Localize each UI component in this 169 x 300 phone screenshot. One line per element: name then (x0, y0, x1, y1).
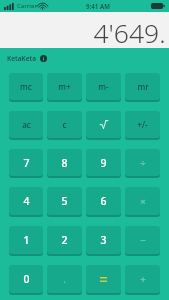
staticText: 7 (23, 156, 30, 170)
button[interactable]: m- (86, 73, 121, 100)
staticText: ÷ (140, 156, 146, 169)
staticText: mr (137, 81, 149, 92)
button[interactable]: 3 (86, 226, 121, 254)
staticText: Carrier (17, 2, 37, 10)
button[interactable]: 4 (9, 187, 43, 215)
button[interactable]: + (125, 265, 160, 293)
staticText: − (140, 234, 146, 247)
staticText: 5 (61, 194, 68, 208)
button[interactable]: − (125, 226, 160, 254)
staticText: 9 (100, 156, 107, 170)
staticText: KetaKeta (7, 54, 36, 63)
button[interactable]: 7 (9, 149, 43, 176)
staticText: 8 (61, 156, 68, 170)
button[interactable]: 0 (9, 265, 43, 293)
staticText: m+ (58, 81, 71, 92)
button[interactable]: 9 (86, 149, 121, 176)
button[interactable]: m+ (47, 73, 82, 100)
staticText: 1 (23, 233, 30, 247)
staticText: × (140, 195, 146, 208)
staticText: 4'649. (93, 15, 166, 48)
button[interactable]: 8 (47, 149, 82, 176)
button[interactable]: × (125, 187, 160, 215)
staticText: 2 (61, 233, 68, 247)
button[interactable]: mr (125, 73, 160, 100)
staticText: 3 (100, 233, 107, 247)
staticText: 9:41 AM (86, 2, 110, 10)
staticText: mc (20, 81, 32, 92)
button[interactable]: mc (9, 73, 43, 100)
button[interactable]: c (47, 111, 82, 138)
button[interactable]: 2 (47, 226, 82, 254)
button[interactable]: 5 (47, 187, 82, 215)
staticText: c (62, 119, 67, 130)
button[interactable]: ÷ (125, 149, 160, 176)
button[interactable]: Equals (86, 265, 121, 293)
staticText: ac (22, 119, 31, 130)
staticText: 0 (23, 272, 30, 286)
staticText: + (140, 273, 146, 286)
button[interactable]: +/- (125, 111, 160, 138)
button[interactable]: Info (40, 55, 47, 62)
staticText: +/- (137, 119, 148, 130)
staticText: 4 (23, 194, 30, 208)
staticText: m- (98, 81, 109, 92)
button[interactable]: ac (9, 111, 43, 138)
button[interactable]: Square root (86, 111, 121, 138)
button[interactable]: 1 (9, 226, 43, 254)
staticText: . (63, 273, 66, 286)
staticText: 6 (100, 194, 107, 208)
button[interactable]: 6 (86, 187, 121, 215)
